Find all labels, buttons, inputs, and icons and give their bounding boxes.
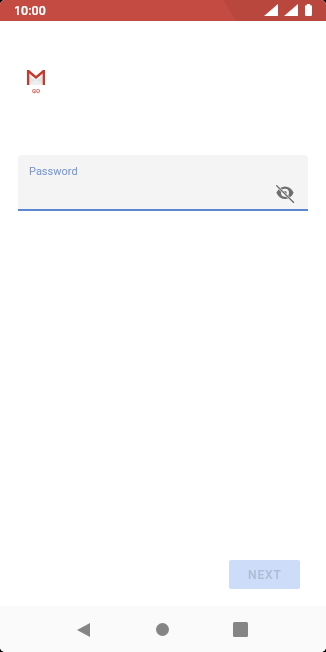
- button[interactable]: Back: [62, 608, 105, 651]
- button[interactable]: Recents: [219, 608, 262, 651]
- button[interactable]: Password: [18, 155, 308, 211]
- staticText: GO: [32, 87, 41, 94]
- staticText: NEXT: [248, 568, 282, 582]
- button[interactable]: Toggle password visibility: [273, 180, 297, 204]
- button[interactable]: Home: [141, 608, 184, 651]
- staticText: 10:00: [14, 3, 46, 18]
- staticText: Password: [29, 165, 78, 178]
- button[interactable]: NEXT: [229, 560, 300, 589]
